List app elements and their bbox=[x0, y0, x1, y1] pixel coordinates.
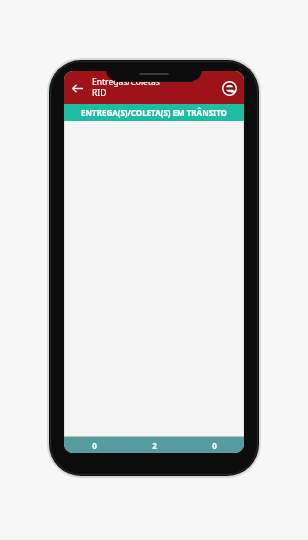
button[interactable]: ENTREGA(S)/COLETA(S) EM TRÂNSITO bbox=[64, 104, 244, 121]
staticText: Entregas/Coletas bbox=[92, 76, 160, 87]
button[interactable]: 0 bbox=[184, 437, 244, 453]
staticText: 0 bbox=[92, 440, 97, 451]
staticText: ENTREGA(S)/COLETA(S) EM TRÂNSITO bbox=[81, 107, 227, 118]
button[interactable]: 0 bbox=[64, 437, 124, 453]
button[interactable]: Back bbox=[66, 77, 88, 99]
button[interactable]: 2 bbox=[124, 437, 184, 453]
staticText: RID bbox=[92, 87, 107, 99]
staticText: 0 bbox=[212, 440, 217, 451]
staticText: 2 bbox=[152, 440, 157, 451]
button[interactable]: Menu bbox=[218, 77, 240, 99]
